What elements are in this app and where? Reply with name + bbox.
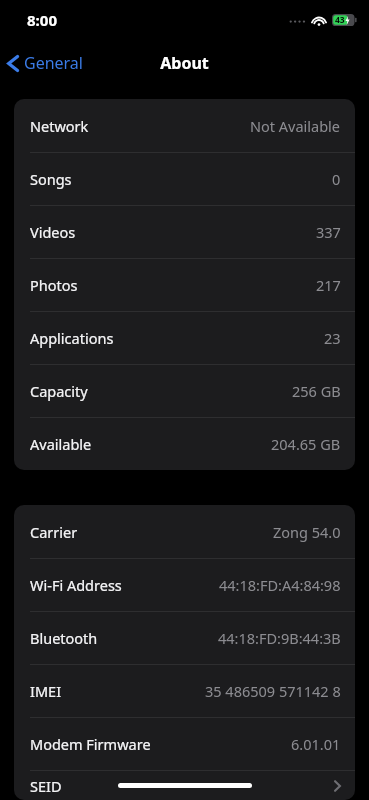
staticText: 23 xyxy=(324,328,341,348)
button[interactable]: General xyxy=(0,48,91,78)
staticText: 6.01.01 xyxy=(291,734,341,754)
staticText: Songs xyxy=(30,169,72,189)
button[interactable]: Network xyxy=(14,99,355,152)
button[interactable]: Bluetooth xyxy=(14,612,355,664)
staticText: Available xyxy=(30,434,92,454)
button[interactable]: Photos xyxy=(14,259,355,311)
staticText: 44:18:FD:9B:44:3B xyxy=(218,628,341,648)
staticText: SEID xyxy=(30,776,62,796)
staticText: About xyxy=(160,52,209,74)
staticText: 44:18:FD:A4:84:98 xyxy=(219,575,341,595)
staticText: Videos xyxy=(30,222,76,242)
staticText: 0 xyxy=(332,169,341,189)
staticText: Applications xyxy=(30,328,114,348)
button[interactable]: IMEI xyxy=(14,665,355,717)
staticText: 8:00 xyxy=(27,10,57,30)
staticText: Bluetooth xyxy=(30,628,98,648)
button[interactable]: SEID xyxy=(14,771,355,800)
other: Open SEID xyxy=(334,780,341,792)
staticText: Capacity xyxy=(30,381,88,401)
button[interactable]: Applications xyxy=(14,312,355,364)
button[interactable]: Wi-Fi Address xyxy=(14,559,355,611)
staticText: Network xyxy=(30,116,89,136)
staticText: Not Available xyxy=(250,116,341,136)
staticText: IMEI xyxy=(30,681,62,701)
staticText: 43 xyxy=(335,14,345,26)
staticText: Wi-Fi Address xyxy=(30,575,122,595)
button[interactable]: Songs xyxy=(14,153,355,205)
staticText: 35 486509 571142 8 xyxy=(205,681,341,701)
staticText: Modem Firmware xyxy=(30,734,151,754)
staticText: 337 xyxy=(316,222,341,242)
staticText: 256 GB xyxy=(292,381,341,401)
staticText: Zong 54.0 xyxy=(273,522,341,542)
staticText: Photos xyxy=(30,275,78,295)
button[interactable]: Videos xyxy=(14,206,355,258)
staticText: Carrier xyxy=(30,522,78,542)
staticText: General xyxy=(24,52,83,74)
button[interactable]: Available xyxy=(14,418,355,470)
staticText: 217 xyxy=(316,275,341,295)
button[interactable]: Carrier xyxy=(14,505,355,558)
button[interactable]: Capacity xyxy=(14,365,355,417)
button[interactable]: Modem Firmware xyxy=(14,718,355,770)
staticText: 204.65 GB xyxy=(271,434,341,454)
